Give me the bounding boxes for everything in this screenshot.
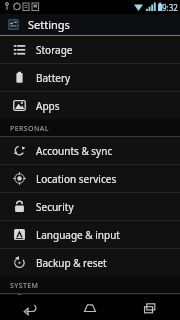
staticText: Battery	[36, 71, 71, 85]
button[interactable]: Apps	[0, 92, 180, 119]
button[interactable]: Storage	[0, 36, 180, 63]
staticText: PERSONAL	[10, 124, 49, 134]
staticText: Security	[36, 200, 74, 214]
staticText: SYSTEM	[10, 281, 39, 291]
button[interactable]: Security	[0, 193, 180, 220]
staticText: Backup & reset	[36, 256, 107, 270]
staticText: Settings	[28, 17, 70, 32]
button[interactable]: Back	[0, 295, 60, 320]
staticText: Storage	[36, 43, 73, 57]
staticText: Language & input	[36, 228, 120, 242]
staticText: Accounts & sync	[36, 144, 113, 158]
button[interactable]: Settings	[0, 14, 180, 35]
button[interactable]: Location services	[0, 165, 180, 192]
button[interactable]: Date & time	[0, 294, 180, 295]
button[interactable]: Backup & reset	[0, 249, 180, 276]
button[interactable]: Recent apps	[120, 295, 180, 320]
staticText: Apps	[36, 99, 60, 113]
button[interactable]: Accounts & sync	[0, 137, 180, 164]
staticText: 9:32	[162, 2, 178, 13]
button[interactable]: Battery	[0, 64, 180, 91]
staticText: Location services	[36, 172, 117, 186]
button[interactable]: Home	[60, 295, 120, 320]
button[interactable]: Language & input	[0, 221, 180, 248]
